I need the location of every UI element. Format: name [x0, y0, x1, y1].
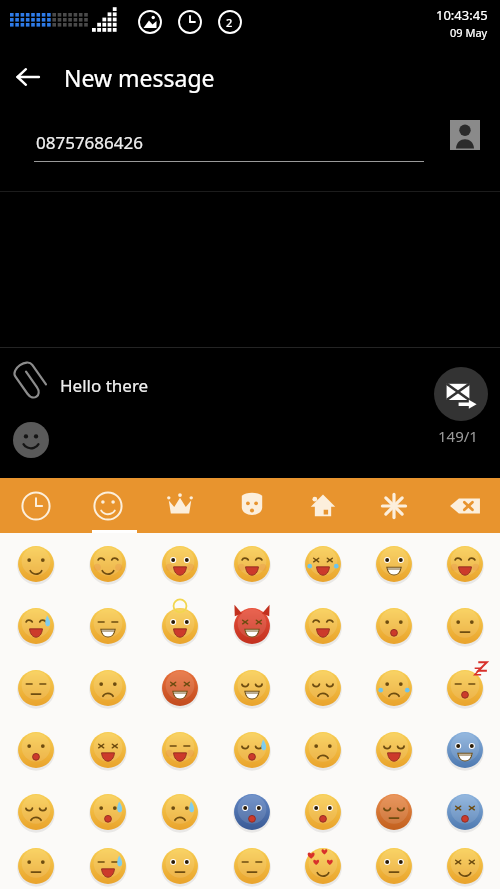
button[interactable]: Smileys	[72, 478, 144, 533]
staticText: 08757686426	[36, 131, 143, 154]
button[interactable]: Back	[0, 49, 56, 105]
staticText: Hello there	[60, 374, 149, 397]
button[interactable]: Choose contact	[450, 120, 480, 150]
button[interactable]: Send	[434, 367, 488, 421]
button[interactable]: Emoji 33	[287, 781, 358, 843]
button[interactable]: Emoji 18	[216, 657, 287, 719]
staticText: 149/1	[438, 426, 478, 446]
button[interactable]: Emoji 23	[72, 719, 144, 781]
button[interactable]: Emoji 35	[429, 781, 500, 843]
button[interactable]: Emoji 20	[358, 657, 429, 719]
button[interactable]: Emoji 2	[72, 533, 144, 595]
button[interactable]: Backspace	[429, 478, 500, 533]
button[interactable]: Emoji 7	[429, 533, 500, 595]
button[interactable]: Emoji 22	[0, 719, 72, 781]
button[interactable]: Emoji 12	[287, 595, 358, 657]
button[interactable]: Attach	[6, 360, 54, 408]
staticText: 10:43:45	[436, 6, 488, 24]
button[interactable]: Emoji 14	[429, 595, 500, 657]
button[interactable]: Emoji 21	[429, 657, 500, 719]
button[interactable]: Places	[287, 478, 358, 533]
button[interactable]: Emoji 17	[144, 657, 216, 719]
button[interactable]: Animals	[216, 478, 287, 533]
button[interactable]: Emoji 4	[216, 533, 287, 595]
button[interactable]: Emoji 25	[216, 719, 287, 781]
button[interactable]: Emoji 36	[0, 843, 72, 889]
button[interactable]: Emoji 5	[287, 533, 358, 595]
button[interactable]: Emoji 37	[72, 843, 144, 889]
button[interactable]: Emoji 16	[72, 657, 144, 719]
button[interactable]: Emoji 9	[72, 595, 144, 657]
button[interactable]: Emoji 13	[358, 595, 429, 657]
button[interactable]: Emoji 28	[429, 719, 500, 781]
button[interactable]: Emoji 29	[0, 781, 72, 843]
button[interactable]: Emoji 11	[216, 595, 287, 657]
button[interactable]: Emoji 19	[287, 657, 358, 719]
button[interactable]: Emoji 1	[0, 533, 72, 595]
button[interactable]: Emoji 26	[287, 719, 358, 781]
button[interactable]: Emoji 41	[358, 843, 429, 889]
staticText: New message	[64, 62, 215, 93]
button[interactable]: Emoji 40	[287, 843, 358, 889]
button[interactable]: Recent	[0, 478, 72, 533]
button[interactable]: Emoji 10	[144, 595, 216, 657]
button[interactable]: Emoji 42	[429, 843, 500, 889]
button[interactable]: Emoji 8	[0, 595, 72, 657]
staticText: 09 May	[450, 25, 488, 40]
button[interactable]: People	[144, 478, 216, 533]
button[interactable]: Emoji 31	[144, 781, 216, 843]
button[interactable]: Emoji 27	[358, 719, 429, 781]
button[interactable]: Emoji 39	[216, 843, 287, 889]
button[interactable]: Emoji 32	[216, 781, 287, 843]
button[interactable]: Emoji 34	[358, 781, 429, 843]
staticText: 2	[226, 15, 233, 30]
button[interactable]: Emoji 24	[144, 719, 216, 781]
button[interactable]: Emoji 30	[72, 781, 144, 843]
button[interactable]: Emoji 6	[358, 533, 429, 595]
button[interactable]: Emoji 38	[144, 843, 216, 889]
button[interactable]: Emoji 3	[144, 533, 216, 595]
button[interactable]: Emoji	[13, 422, 49, 458]
button[interactable]: Emoji 15	[0, 657, 72, 719]
button[interactable]: Symbols	[358, 478, 429, 533]
